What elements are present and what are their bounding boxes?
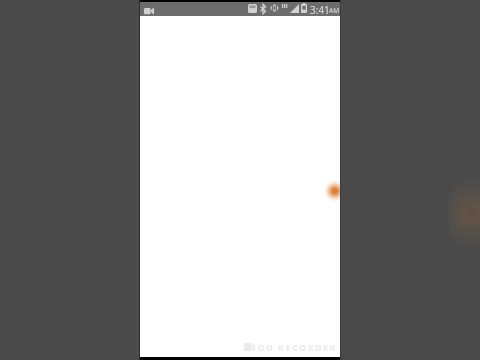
other: Screenshot <box>248 4 257 13</box>
staticText: AM <box>329 6 340 15</box>
button[interactable]: App content <box>140 16 340 357</box>
button[interactable]: Screen recording active <box>144 5 155 14</box>
staticText: DU RECORDER <box>258 341 337 353</box>
other: Mobile data <box>282 4 288 8</box>
other: Vibrate mode <box>270 3 279 13</box>
other: Bluetooth on <box>260 4 266 14</box>
other: Signal strength <box>290 4 299 13</box>
staticText: 3:41 <box>310 3 330 17</box>
other: Battery <box>301 3 307 13</box>
